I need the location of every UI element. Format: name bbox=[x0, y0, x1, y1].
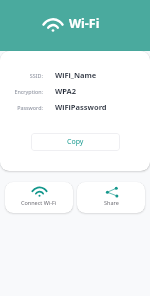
staticText: Connect Wi-Fi bbox=[21, 199, 57, 206]
staticText: Encryption: bbox=[14, 88, 43, 95]
staticText: Password: bbox=[17, 104, 43, 111]
staticText: WiFi_Name bbox=[55, 70, 97, 80]
staticText: Copy bbox=[67, 137, 84, 147]
button[interactable]: Copy bbox=[31, 133, 120, 151]
staticText: Wi-Fi bbox=[69, 15, 100, 32]
staticText: WPA2 bbox=[55, 86, 77, 96]
staticText: Share bbox=[104, 199, 119, 206]
staticText: SSID: bbox=[29, 72, 43, 79]
button[interactable]: Share bbox=[77, 182, 145, 213]
staticText: WiFiPassword bbox=[55, 102, 107, 112]
button[interactable]: Connect Wi-Fi bbox=[5, 182, 73, 213]
